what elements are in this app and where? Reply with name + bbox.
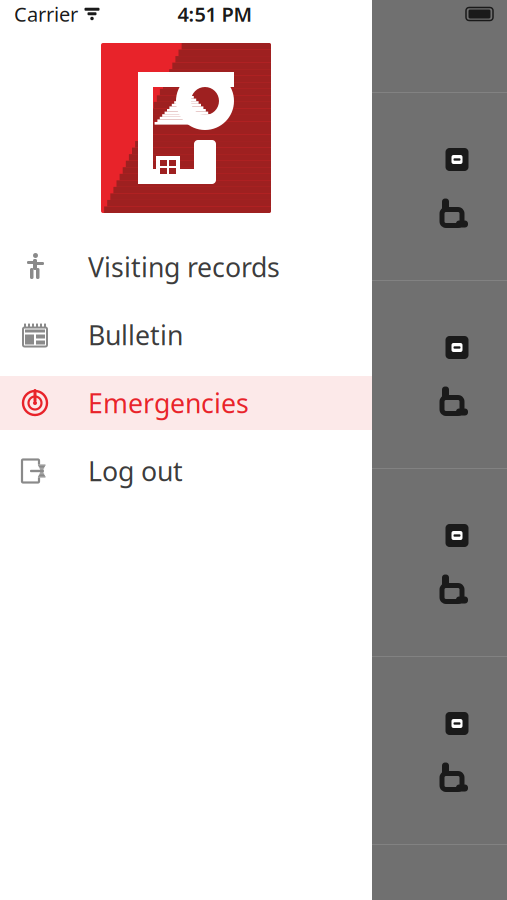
staticText: 4:51 PM — [177, 1, 252, 27]
button[interactable]: Bulletin — [0, 308, 372, 362]
staticText: Emergencies — [88, 385, 249, 421]
staticText: Carrier — [14, 1, 78, 27]
staticText: Log out — [88, 453, 183, 489]
staticText: Visiting records — [88, 249, 280, 285]
button[interactable]: Visiting records — [0, 240, 372, 294]
button[interactable]: Log out — [0, 444, 372, 498]
staticText: Bulletin — [88, 317, 183, 353]
button[interactable]: Emergencies — [0, 376, 372, 430]
